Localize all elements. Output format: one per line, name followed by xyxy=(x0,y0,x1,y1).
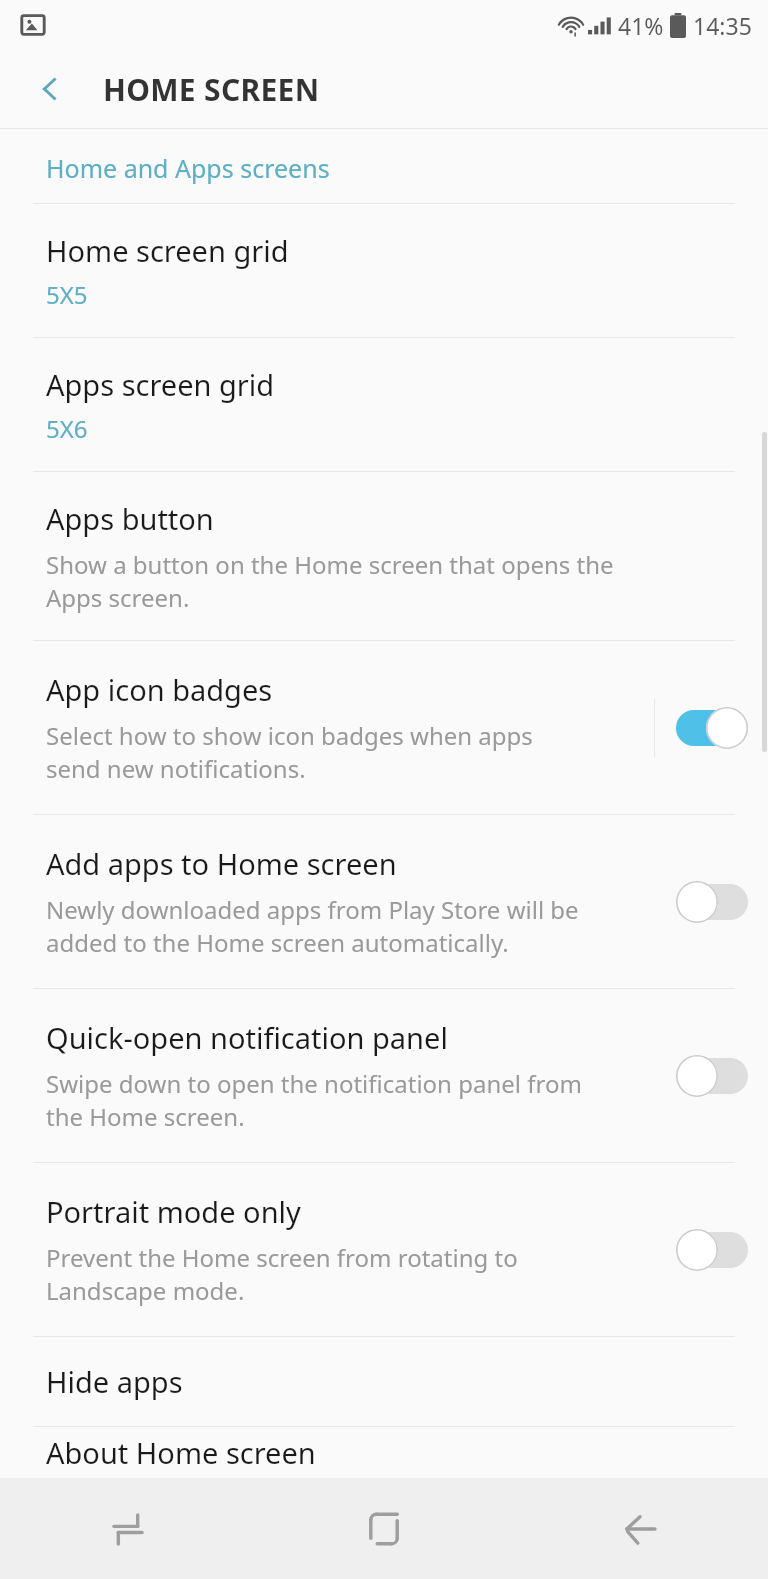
button[interactable]: Back xyxy=(512,1478,768,1579)
staticText: 14:35 xyxy=(693,10,752,41)
button[interactable]: Recents xyxy=(0,1478,256,1579)
button[interactable]: Home screen grid xyxy=(0,204,768,337)
staticText: Hide apps xyxy=(46,1362,183,1401)
button[interactable]: App icon badges on xyxy=(655,641,768,814)
staticText: Select how to show icon badges when apps… xyxy=(46,719,533,785)
staticText: Swipe down to open the notification pane… xyxy=(46,1067,582,1133)
staticText: Home screen grid xyxy=(46,231,289,270)
button[interactable]: Portrait mode only off xyxy=(655,1163,768,1336)
staticText: HOME SCREEN xyxy=(103,69,320,110)
button[interactable]: Add apps to Home screen xyxy=(0,815,768,988)
staticText: 5X6 xyxy=(46,412,88,445)
staticText: Show a button on the Home screen that op… xyxy=(46,548,614,614)
staticText: Portrait mode only xyxy=(46,1192,301,1231)
button[interactable]: Quick-open notification panel off xyxy=(655,989,768,1162)
button[interactable]: Hide apps xyxy=(0,1337,768,1426)
staticText: Home and Apps screens xyxy=(46,151,330,185)
staticText: 41% xyxy=(618,10,664,41)
staticText: Newly downloaded apps from Play Store wi… xyxy=(46,893,579,959)
button[interactable]: Quick-open notification panel xyxy=(0,989,768,1162)
button[interactable]: About Home screen xyxy=(0,1427,768,1478)
staticText: Prevent the Home screen from rotating to… xyxy=(46,1241,518,1307)
button[interactable]: Portrait mode only xyxy=(0,1163,768,1336)
button[interactable]: Home and Apps screens xyxy=(0,129,768,203)
staticText: 5X5 xyxy=(46,278,88,311)
staticText: About Home screen xyxy=(46,1433,316,1472)
button[interactable]: App icon badges xyxy=(0,641,768,814)
button[interactable]: Back xyxy=(22,61,78,117)
staticText: Apps button xyxy=(46,499,214,538)
button[interactable]: Apps button xyxy=(0,472,768,640)
button[interactable]: Home xyxy=(256,1478,512,1579)
staticText: Quick-open notification panel xyxy=(46,1018,448,1057)
staticText: Add apps to Home screen xyxy=(46,844,397,883)
button[interactable]: Apps screen grid xyxy=(0,338,768,471)
button[interactable]: Add apps to Home screen off xyxy=(655,815,768,988)
staticText: Apps screen grid xyxy=(46,365,275,404)
staticText: App icon badges xyxy=(46,670,273,709)
